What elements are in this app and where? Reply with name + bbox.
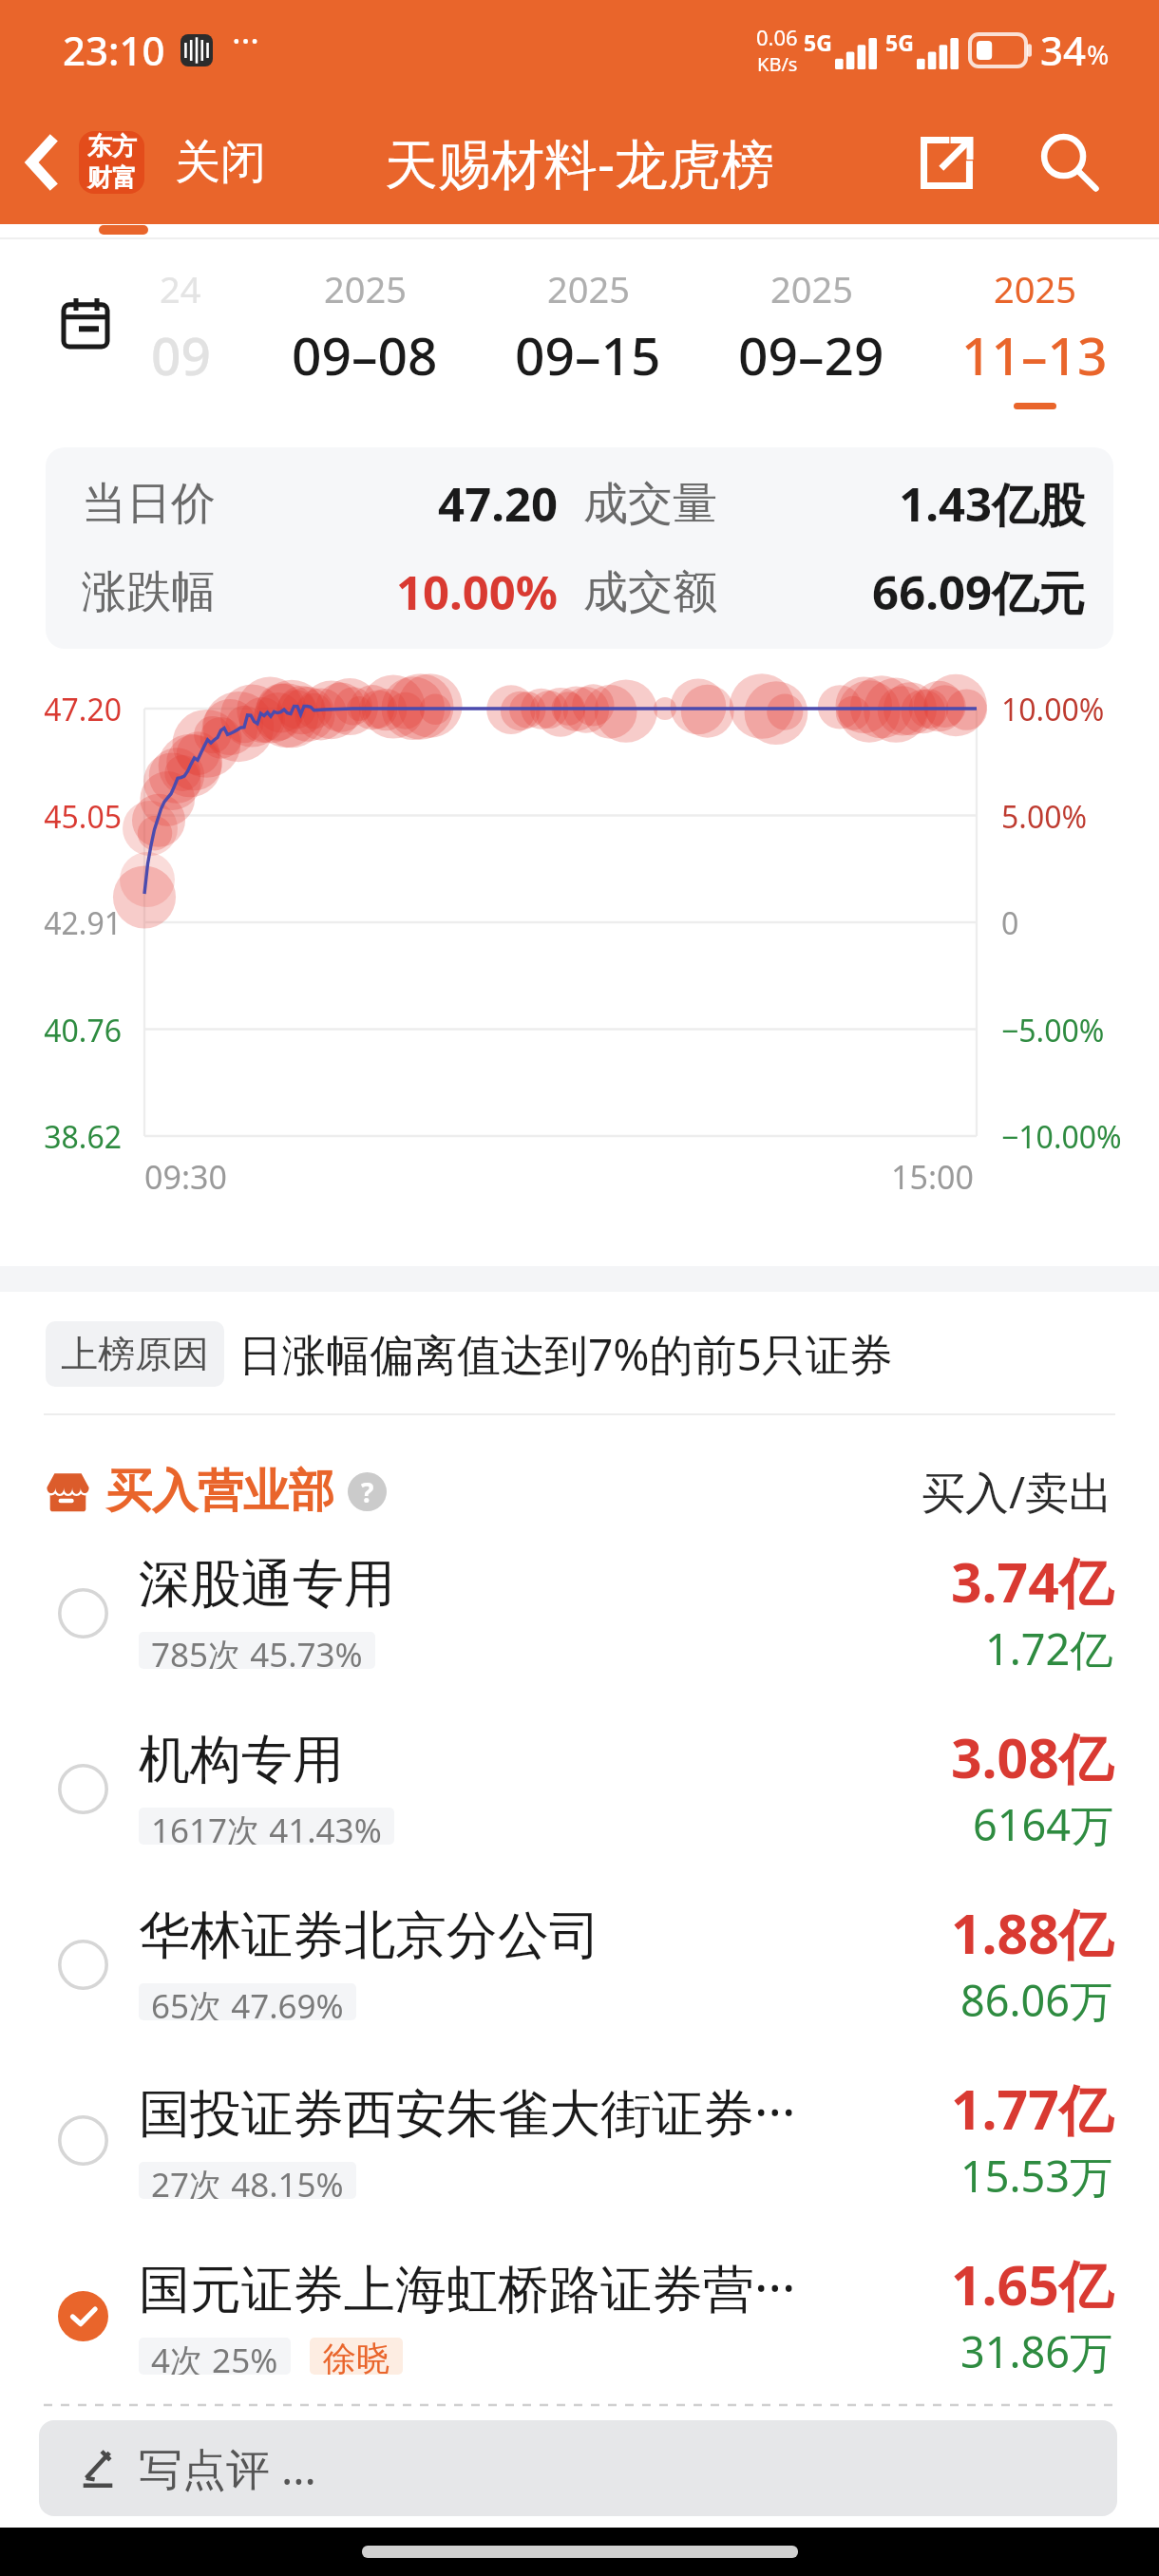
staticText: 09	[151, 319, 211, 390]
staticText: 38.62	[27, 1116, 122, 1158]
staticText: 上榜原因	[61, 1331, 209, 1377]
staticText: −5.00%	[1001, 1010, 1105, 1051]
staticText: 0.06	[756, 23, 798, 51]
staticText: ···	[232, 17, 259, 64]
button[interactable]: 写点评 ...	[39, 2420, 1117, 2516]
staticText: 66.09亿元	[717, 560, 1085, 624]
staticText: 45.05	[27, 796, 122, 838]
staticText: ?	[361, 1474, 374, 1510]
staticText: 国元证券上海虹桥路证券营···	[139, 2252, 796, 2322]
staticText: 华林证券北京分公司	[139, 1904, 600, 1968]
staticText: 成交额	[583, 564, 717, 620]
button[interactable]: 深股通专用	[0, 1528, 1159, 1697]
staticText: 2025	[994, 264, 1076, 313]
staticText: 31.86万	[960, 2322, 1113, 2380]
staticText: 27次 48.15%	[151, 2162, 344, 2199]
button[interactable]: 2025	[260, 264, 469, 390]
staticText: 24	[160, 264, 201, 313]
staticText: 2025	[770, 264, 853, 313]
button[interactable]: Help	[348, 1472, 387, 1511]
staticText: 86.06万	[960, 1971, 1113, 2029]
staticText: 买入/卖出	[921, 1462, 1113, 1522]
staticText: 1.77亿	[951, 2072, 1113, 2146]
staticText: 国投证券西安朱雀大街证券···	[139, 2076, 796, 2147]
staticText: 11–13	[961, 319, 1108, 390]
staticText: 1.65亿	[951, 2247, 1113, 2321]
staticText: 34	[1040, 23, 1087, 77]
staticText: 42.91	[27, 902, 122, 944]
staticText: 47.20	[216, 472, 558, 536]
button[interactable]: Search	[1022, 115, 1117, 210]
button[interactable]: 国投证券西安朱雀大街证券···	[0, 2055, 1159, 2225]
button[interactable]: 2025	[930, 264, 1139, 409]
staticText: 天赐材料-龙虎榜	[385, 126, 775, 199]
button[interactable]: 2025	[707, 264, 916, 390]
staticText: 买入营业部	[106, 1463, 334, 1520]
button[interactable]: 24	[76, 264, 285, 390]
staticText: 09–15	[515, 319, 661, 390]
staticText: 40.76	[27, 1010, 122, 1051]
button[interactable]: 华林证券北京分公司	[0, 1880, 1159, 2049]
staticText: 1617次 41.43%	[151, 1808, 382, 1845]
staticText: 09–08	[292, 319, 438, 390]
button[interactable]: 东方	[79, 131, 266, 194]
staticText: 关闭	[175, 134, 266, 191]
staticText: 2025	[547, 264, 630, 313]
staticText: %	[1087, 36, 1110, 72]
staticText: 1.43亿股	[717, 472, 1085, 536]
staticText: 3.08亿	[951, 1720, 1113, 1794]
staticText: KB/s	[757, 51, 798, 77]
button[interactable]: Back	[2, 100, 82, 224]
staticText: 15.53万	[960, 2147, 1113, 2205]
staticText: 785次 45.73%	[151, 1632, 363, 1669]
staticText: 4次 25%	[151, 2338, 278, 2375]
staticText: 5G	[885, 28, 914, 57]
staticText: 1.72亿	[985, 1619, 1113, 1677]
staticText: 写点评 ...	[139, 2438, 316, 2498]
staticText: 10.00%	[1001, 689, 1105, 730]
staticText: 3.74亿	[951, 1544, 1113, 1619]
staticText: 当日价	[82, 476, 216, 532]
staticText: 东方	[87, 131, 137, 162]
staticText: 23:10	[63, 23, 165, 77]
button[interactable]: 国元证券上海虹桥路证券营···	[0, 2231, 1159, 2400]
staticText: 2025	[324, 264, 407, 313]
staticText: −10.00%	[1001, 1116, 1122, 1158]
staticText: 09:30	[144, 1155, 227, 1199]
staticText: 0	[1001, 902, 1019, 944]
staticText: 10.00%	[216, 560, 558, 624]
button[interactable]: Share	[899, 115, 994, 210]
staticText: 1.88亿	[951, 1896, 1113, 1970]
button[interactable]: 2025	[484, 264, 693, 390]
staticText: 徐晓	[323, 2338, 389, 2375]
staticText: 5G	[804, 28, 832, 57]
staticText: 成交量	[583, 476, 717, 532]
staticText: 6164万	[973, 1795, 1113, 1853]
button[interactable]: 机构专用	[0, 1704, 1159, 1873]
staticText: 深股通专用	[139, 1552, 395, 1617]
staticText: 09–29	[738, 319, 884, 390]
button[interactable]: Calendar	[44, 280, 127, 364]
staticText: 47.20	[27, 689, 122, 730]
staticText: 15:00	[891, 1155, 974, 1199]
staticText: 财富	[87, 162, 137, 194]
staticText: 机构专用	[139, 1728, 344, 1792]
staticText: 5.00%	[1001, 796, 1088, 838]
staticText: 65次 47.69%	[151, 1983, 344, 2020]
staticText: 涨跌幅	[82, 564, 216, 620]
staticText: 日涨幅偏离值达到7%的前5只证券	[238, 1324, 893, 1384]
